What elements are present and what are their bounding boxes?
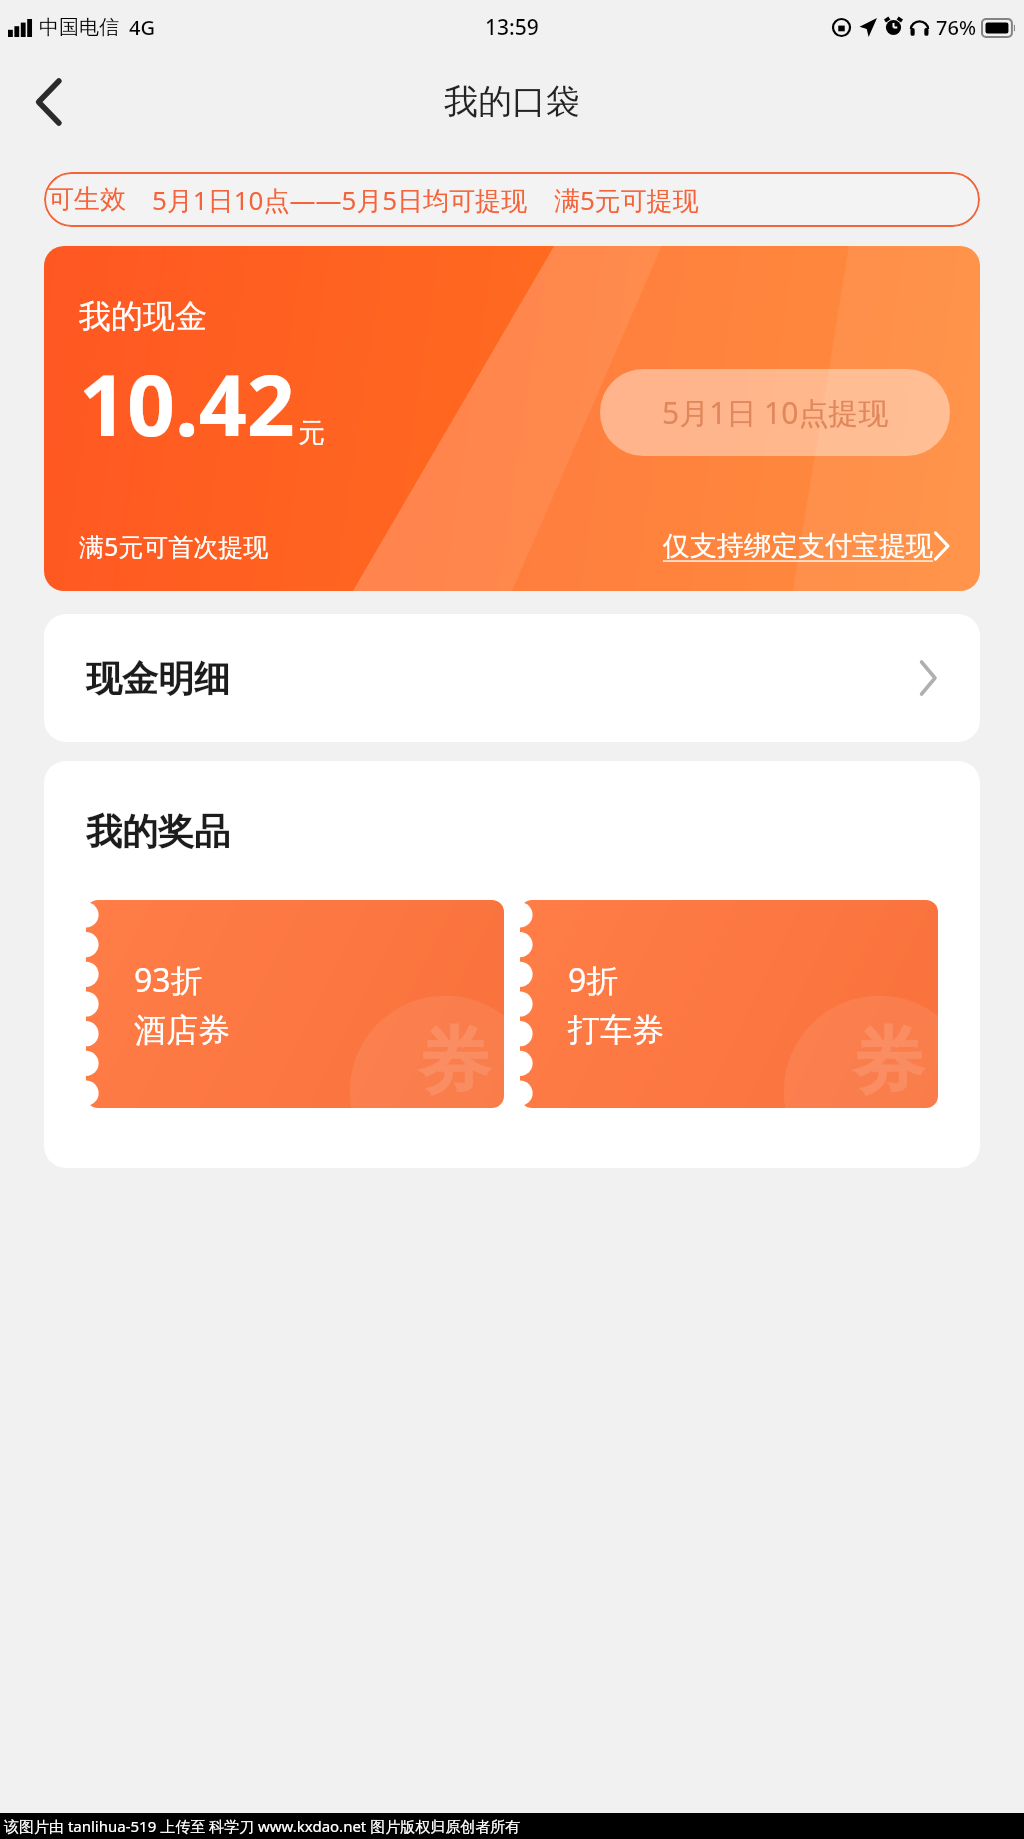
staticText: 现金明细 — [86, 656, 230, 701]
staticText: 券 — [852, 1017, 924, 1108]
staticText: 我的奖品 — [86, 809, 230, 854]
button[interactable]: 现金明细 — [44, 614, 980, 742]
button[interactable]: 仅支持绑定支付宝提现 — [663, 529, 950, 563]
staticText: 13:59 — [485, 13, 539, 42]
staticText: 券 — [418, 1017, 490, 1108]
staticText: 仅支持绑定支付宝提现 — [663, 529, 933, 563]
button[interactable]: 券 — [520, 900, 938, 1108]
staticText: 满5元可提现 — [554, 182, 699, 218]
staticText: 元 — [298, 416, 325, 450]
staticText: 可生效 — [48, 183, 126, 216]
staticText: 打车券 — [568, 1010, 664, 1050]
staticText: 我的口袋 — [444, 80, 580, 123]
staticText: 我的现金 — [79, 296, 207, 336]
staticText: 76% — [936, 14, 976, 41]
button[interactable]: 券 — [86, 900, 504, 1108]
button[interactable]: 我的现金 — [44, 246, 980, 591]
staticText: 10.42 — [79, 346, 295, 460]
staticText: 中国电信 — [39, 15, 119, 40]
staticText: 4G — [129, 14, 155, 41]
staticText: 9折 — [568, 958, 619, 1002]
button[interactable]: 5月1日 10点提现 — [600, 369, 950, 456]
staticText: 5月1日 10点提现 — [662, 392, 889, 433]
staticText: 满5元可首次提现 — [79, 529, 269, 563]
staticText: 该图片由 tanlihua-519 上传至 科学刀 www.kxdao.net … — [4, 1816, 521, 1836]
button[interactable]: 可生效 — [44, 172, 980, 227]
staticText: 5月1日10点——5月5日均可提现 — [152, 182, 528, 218]
button[interactable]: Back — [18, 71, 80, 133]
staticText: 93折 — [134, 958, 203, 1002]
staticText: 酒店券 — [134, 1010, 230, 1050]
